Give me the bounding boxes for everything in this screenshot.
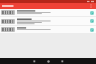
button[interactable]: Open item <box>90 19 94 23</box>
button[interactable]: Open item <box>0 26 96 33</box>
button[interactable]: Recent apps <box>60 59 65 64</box>
button[interactable] <box>2 3 16 9</box>
button[interactable]: Home <box>46 59 51 64</box>
button[interactable]: Open item <box>90 11 94 15</box>
button[interactable]: More options <box>88 3 94 9</box>
button[interactable]: Open item <box>0 17 96 25</box>
button[interactable]: Open item <box>90 28 94 32</box>
button[interactable]: Open item <box>0 9 96 16</box>
button[interactable]: Back <box>32 59 37 64</box>
